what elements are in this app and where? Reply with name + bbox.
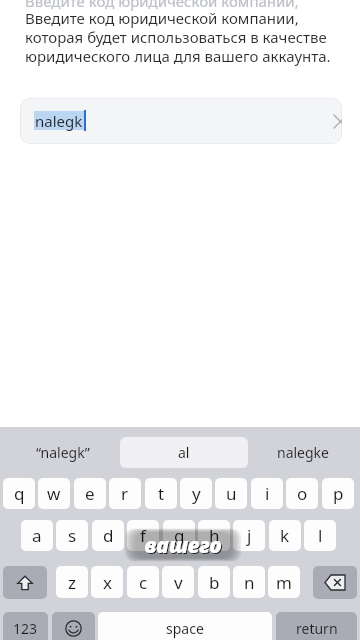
button[interactable]: h — [198, 520, 230, 551]
staticText: f — [140, 524, 146, 547]
button[interactable]: a — [21, 520, 53, 551]
staticText: z — [68, 571, 76, 594]
button[interactable]: o — [286, 478, 318, 509]
button[interactable]: space — [98, 612, 272, 640]
button[interactable]: v — [162, 566, 194, 598]
staticText: Введите код юридической компании, — [25, 0, 299, 11]
staticText: k — [280, 524, 290, 547]
button[interactable]: nalegk — [20, 98, 342, 144]
staticText: u — [226, 482, 237, 505]
button[interactable]: n — [233, 566, 265, 598]
staticText: r — [121, 482, 129, 505]
button[interactable]: d — [92, 520, 124, 551]
button[interactable]: return — [276, 612, 357, 640]
button[interactable]: z — [56, 566, 88, 598]
staticText: t — [158, 482, 165, 505]
staticText: i — [265, 482, 270, 505]
staticText: 123 — [13, 619, 38, 638]
staticText: nalegk — [35, 111, 83, 131]
staticText: return — [296, 619, 338, 638]
staticText: e — [85, 482, 95, 505]
button[interactable]: Clear text — [325, 106, 342, 136]
button[interactable]: i — [251, 478, 283, 509]
staticText: x — [103, 571, 112, 594]
button[interactable]: x — [91, 566, 123, 598]
staticText: h — [209, 524, 220, 547]
staticText: s — [68, 524, 77, 547]
staticText: q — [14, 482, 25, 505]
button[interactable]: Shift — [3, 566, 47, 599]
button[interactable]: r — [109, 478, 141, 509]
staticText: al — [178, 443, 190, 462]
staticText: l — [318, 524, 323, 547]
button[interactable]: t — [145, 478, 177, 509]
button[interactable]: j — [233, 520, 265, 551]
button[interactable]: u — [215, 478, 247, 509]
button[interactable]: y — [180, 478, 212, 509]
button[interactable]: q — [3, 478, 35, 509]
staticText: y — [192, 482, 201, 505]
button[interactable]: f — [127, 520, 159, 551]
staticText: o — [297, 482, 308, 505]
staticText: вашего — [144, 531, 222, 560]
button[interactable]: p — [322, 478, 354, 509]
staticText: p — [333, 482, 344, 505]
staticText: w — [47, 482, 61, 505]
button[interactable]: l — [304, 520, 336, 551]
button[interactable]: g — [163, 520, 195, 551]
staticText: m — [276, 571, 292, 594]
button[interactable]: e — [74, 478, 106, 509]
staticText: v — [174, 571, 183, 594]
staticText: a — [32, 524, 42, 547]
staticText: j — [247, 524, 252, 547]
button[interactable]: m — [268, 566, 300, 598]
staticText: b — [209, 571, 220, 594]
staticText: c — [139, 571, 148, 594]
staticText: Введите код юридической компании, котора… — [25, 8, 335, 67]
staticText: space — [166, 619, 204, 638]
button[interactable]: c — [127, 566, 159, 598]
button[interactable]: nalegke — [252, 437, 354, 468]
staticText: вашего — [145, 532, 223, 561]
button[interactable]: s — [56, 520, 88, 551]
staticText: “nalegk” — [36, 443, 90, 462]
button[interactable]: b — [198, 566, 230, 598]
button[interactable]: al — [120, 437, 248, 468]
button[interactable]: Emoji — [52, 612, 95, 640]
button[interactable]: k — [269, 520, 301, 551]
staticText: nalegke — [277, 443, 329, 462]
staticText: d — [103, 524, 114, 547]
button[interactable]: 123 — [3, 612, 48, 640]
button[interactable]: Backspace — [313, 566, 357, 599]
button[interactable]: w — [38, 478, 70, 509]
staticText: n — [244, 571, 255, 594]
staticText: g — [174, 524, 185, 547]
button[interactable]: “nalegk” — [10, 437, 115, 468]
